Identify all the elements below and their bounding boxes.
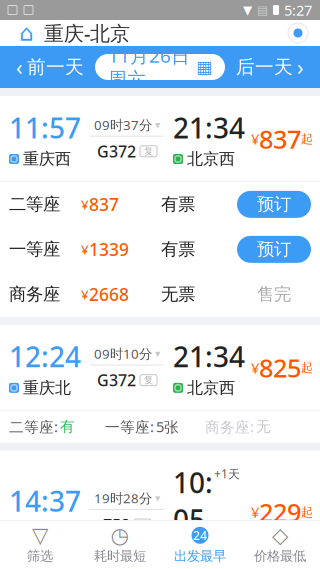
staticText: 起 bbox=[301, 131, 313, 146]
staticText: ⌂ bbox=[19, 20, 33, 46]
staticText: 无 bbox=[256, 418, 271, 436]
staticText: G372 bbox=[97, 141, 136, 162]
staticText: 21:34 bbox=[173, 338, 245, 375]
staticText: 5张 bbox=[156, 417, 179, 436]
staticText: 2668 bbox=[89, 283, 129, 306]
staticText: 825 bbox=[259, 351, 301, 384]
staticText: 重庆北 bbox=[23, 522, 71, 542]
button[interactable]: 11月26日 周六 bbox=[95, 54, 225, 80]
staticText: 耗时最短 bbox=[94, 548, 146, 564]
button[interactable]: 预订 bbox=[237, 191, 311, 218]
staticText: ▤ bbox=[257, 3, 268, 17]
staticText: 14:37 bbox=[9, 482, 81, 519]
staticText: ▼ bbox=[243, 3, 252, 17]
button[interactable]: 24 bbox=[160, 523, 240, 567]
staticText: ¥ bbox=[251, 358, 259, 377]
staticText: 有 bbox=[60, 418, 75, 436]
button[interactable]: 首页 bbox=[12, 19, 40, 47]
staticText: 837 bbox=[259, 122, 301, 156]
staticText: 复 bbox=[144, 374, 153, 386]
staticText: 二等座 bbox=[9, 194, 60, 215]
staticText: 筛选 bbox=[27, 548, 53, 564]
staticText: ¥ bbox=[251, 129, 259, 149]
staticText: ◷ bbox=[110, 523, 129, 547]
staticText: 24 bbox=[193, 527, 207, 543]
button[interactable]: ‹ bbox=[6, 50, 94, 84]
staticText: 价格最低 bbox=[254, 548, 306, 564]
staticText: 09时10分 bbox=[94, 345, 152, 362]
staticText: 起 bbox=[301, 360, 313, 375]
staticText: ‹ bbox=[16, 53, 23, 81]
staticText: 12:24 bbox=[9, 338, 81, 375]
staticText: 售完 bbox=[257, 284, 291, 305]
button[interactable]: 后一天 bbox=[226, 50, 314, 84]
button[interactable]: 11:57 bbox=[0, 96, 320, 181]
staticText: 北京西 bbox=[187, 378, 235, 398]
staticText: Z50 bbox=[103, 514, 130, 535]
staticText: 北京西 bbox=[187, 149, 235, 169]
staticText: 重庆西 bbox=[23, 149, 71, 169]
staticText: 一等座 bbox=[9, 239, 60, 260]
staticText: 229 bbox=[259, 495, 301, 529]
staticText: 预订 bbox=[257, 239, 291, 260]
staticText: 有票 bbox=[161, 239, 195, 260]
staticText: 19时28分 bbox=[94, 489, 152, 507]
staticText: 北京西 bbox=[187, 541, 235, 561]
staticText: ▾ bbox=[155, 492, 160, 504]
staticText: 重庆北 bbox=[23, 378, 71, 398]
staticText: G372 bbox=[97, 369, 136, 391]
staticText: 预订 bbox=[257, 194, 291, 215]
staticText: ¥ bbox=[81, 285, 89, 303]
staticText: 837 bbox=[89, 193, 119, 216]
button[interactable]: ◷ bbox=[80, 523, 160, 567]
staticText: 09时37分 bbox=[94, 116, 152, 134]
button[interactable]: 12:24 bbox=[0, 325, 320, 410]
staticText: 5:27 bbox=[284, 0, 312, 20]
staticText: 一等座: bbox=[105, 417, 154, 436]
button[interactable]: ◇ bbox=[240, 523, 320, 567]
button[interactable]: ▽ bbox=[0, 523, 80, 567]
staticText: 11月26日 周六 bbox=[108, 43, 190, 91]
staticText: 商务座 bbox=[9, 284, 60, 305]
staticText: ▾ bbox=[155, 348, 160, 360]
staticText: ▽ bbox=[32, 523, 48, 547]
button[interactable]: 预订 bbox=[237, 236, 311, 263]
staticText: 10:05 bbox=[173, 464, 213, 538]
staticText: ¥ bbox=[251, 502, 259, 522]
staticText: 21:34 bbox=[173, 109, 245, 146]
staticText: 商务座: bbox=[205, 417, 254, 436]
staticText: 11:57 bbox=[9, 109, 81, 146]
staticText: 重庆-北京 bbox=[44, 20, 130, 46]
staticText: 前一天 bbox=[27, 55, 84, 78]
staticText: ¥ bbox=[81, 240, 89, 258]
staticText: ▾ bbox=[155, 119, 160, 131]
staticText: 二等座: bbox=[9, 417, 58, 436]
staticText: 复 bbox=[138, 519, 147, 530]
staticText: ◇ bbox=[272, 523, 288, 547]
staticText: 出发最早 bbox=[174, 548, 226, 564]
button[interactable]: 刷新 bbox=[288, 23, 308, 43]
staticText: ¥ bbox=[81, 195, 89, 213]
staticText: 复 bbox=[144, 145, 153, 157]
staticText: › bbox=[297, 53, 304, 81]
staticText: 无票 bbox=[161, 284, 195, 305]
staticText: 1339 bbox=[89, 238, 129, 261]
staticText: +1天 bbox=[214, 466, 240, 482]
staticText: 有票 bbox=[161, 194, 195, 215]
staticText: 后一天 bbox=[236, 55, 293, 78]
staticText: 起 bbox=[301, 505, 313, 519]
staticText: ▦ bbox=[196, 57, 212, 77]
button[interactable]: 14:37 bbox=[0, 451, 320, 569]
